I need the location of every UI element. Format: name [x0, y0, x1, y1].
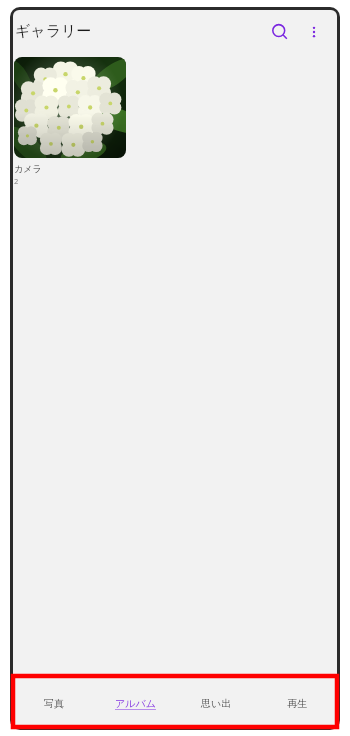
button[interactable]: 思い出 [181, 679, 251, 727]
button[interactable]: 写真 [19, 679, 89, 727]
staticText: 写真 [44, 697, 64, 710]
button[interactable]: カメラ [14, 57, 126, 186]
staticText: カメラ [14, 163, 42, 174]
button[interactable]: 再生 [262, 679, 332, 727]
staticText: 2 [14, 176, 19, 186]
button[interactable]: More options [299, 17, 329, 47]
button[interactable]: アルバム [100, 679, 170, 727]
staticText: 再生 [287, 697, 307, 710]
staticText: ギャラリー [15, 22, 92, 41]
button[interactable]: Search [263, 15, 297, 49]
staticText: アルバム [115, 697, 156, 710]
staticText: 思い出 [201, 697, 232, 710]
